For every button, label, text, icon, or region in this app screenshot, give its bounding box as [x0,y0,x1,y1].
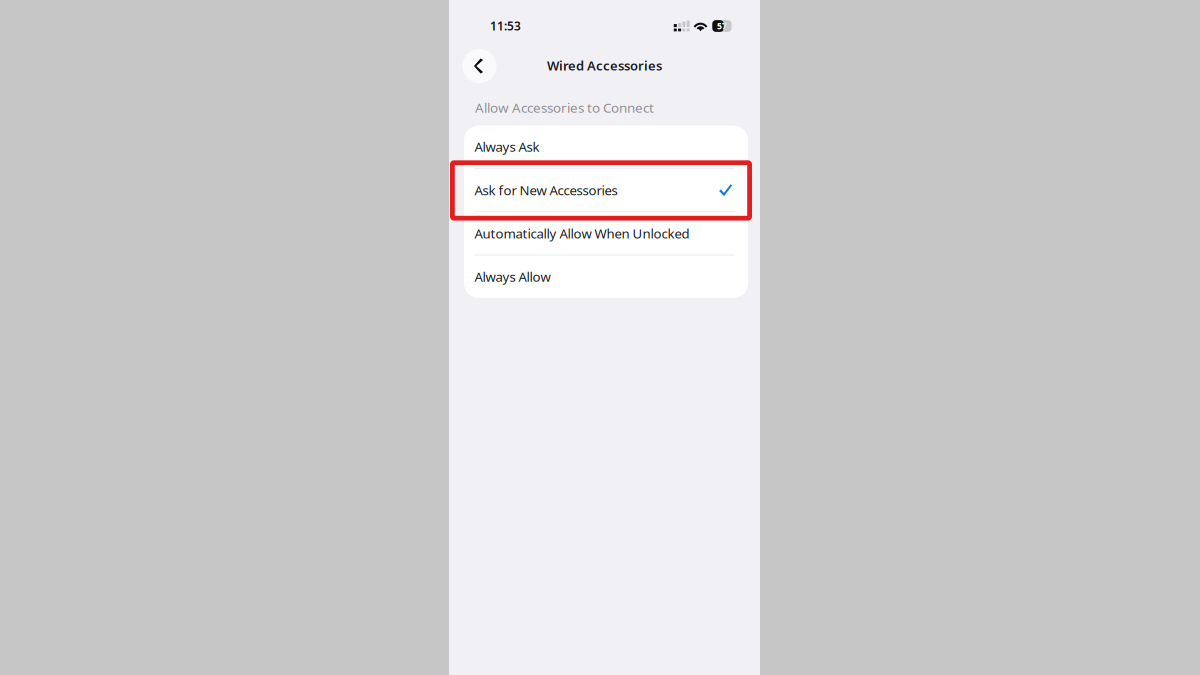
button[interactable]: Back [462,49,496,83]
button[interactable]: Always Allow [464,256,748,298]
button[interactable]: Ask for New Accessories [464,169,748,211]
staticText: Ask for New Accessories [474,181,617,199]
staticText: 57 [717,20,727,32]
staticText: Allow Accessories to Connect [475,98,654,117]
staticText: Always Ask [474,138,539,156]
button[interactable]: Always Ask [464,125,748,168]
button[interactable]: Automatically Allow When Unlocked [464,212,748,255]
staticText: 57 [717,20,727,32]
staticText: Always Allow [474,268,550,286]
staticText: 11:53 [490,18,521,34]
staticText: Wired Accessories [547,56,662,74]
staticText: Automatically Allow When Unlocked [474,224,689,242]
